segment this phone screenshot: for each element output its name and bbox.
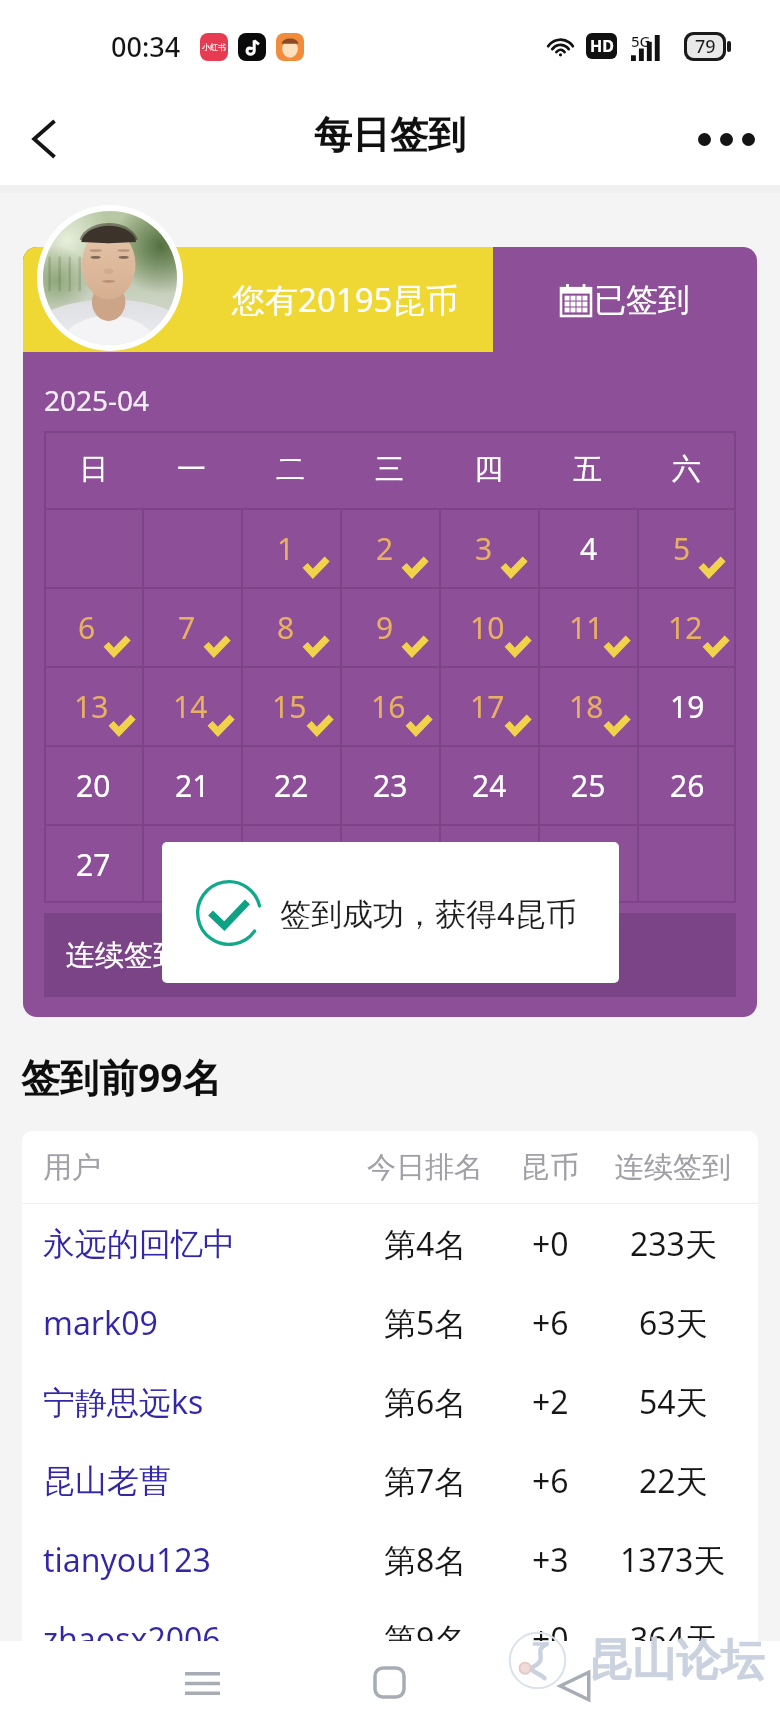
staticText: 昆山老曹 [43,1461,338,1501]
staticText: 22 [274,765,309,806]
staticText: +0 [532,1617,569,1641]
button[interactable]: 宁静思远ks [22,1362,758,1441]
staticText: 三 [375,451,404,488]
button[interactable]: 昆山老曹 [22,1441,758,1520]
staticText: +2 [532,1380,569,1424]
button[interactable]: Home [353,1646,425,1718]
staticText: +6 [532,1459,569,1503]
staticText: 9 [376,607,394,648]
staticText: +3 [532,1538,569,1582]
staticText: 22天 [639,1459,708,1503]
staticText: 26 [670,765,705,806]
staticText: 1 [277,528,295,569]
button[interactable]: 永远的回忆中 [22,1204,758,1283]
staticText: 昆币 [521,1149,579,1186]
staticText: 63天 [639,1301,708,1345]
staticText: 四 [474,451,503,488]
staticText: 第8名 [384,1538,467,1582]
staticText: 17 [470,686,505,727]
staticText: 2025-04 [44,381,150,419]
staticText: 1373天 [620,1538,726,1582]
staticText: 今日排名 [367,1149,483,1186]
staticText: 18 [569,686,604,727]
staticText: 13 [74,686,109,727]
staticText: 六 [672,451,701,488]
button[interactable]: Back [538,1650,610,1722]
staticText: 14 [173,686,208,727]
staticText: 第5名 [384,1301,467,1345]
staticText: 昆山论坛 [588,1633,764,1688]
staticText: 宁静思远ks [43,1380,338,1424]
staticText: 15 [272,686,307,727]
staticText: 用户 [43,1149,338,1186]
staticText: 364天 [630,1617,717,1641]
staticText: 五 [573,451,602,488]
staticText: 3 [475,528,493,569]
staticText: HD [590,35,614,57]
staticText: 00:34 [111,28,181,65]
staticText: tianyou123 [43,1538,338,1582]
staticText: 5G [631,31,651,51]
staticText: mark09 [43,1301,338,1345]
staticText: 签到成功，获得4昆币 [280,892,577,934]
button[interactable]: Back [8,103,80,175]
button[interactable]: 已签到 [493,247,757,352]
staticText: 21 [175,765,210,806]
staticText: 54天 [639,1380,708,1424]
staticText: 233天 [630,1222,717,1266]
staticText: 6 [78,607,96,648]
staticText: 日 [79,451,108,488]
staticText: 19 [670,686,705,727]
staticText: 2 [376,528,394,569]
staticText: zhaosx2006 [43,1617,338,1641]
staticText: 25 [571,765,606,806]
button[interactable]: mark09 [22,1283,758,1362]
staticText: 一 [177,451,206,488]
staticText: 签到前99名 [21,1050,222,1103]
staticText: 已签到 [594,280,690,320]
staticText: +0 [532,1222,569,1266]
staticText: 小红书 [202,42,226,52]
staticText: 7 [178,607,196,648]
staticText: 8 [277,607,295,648]
staticText: 连续签到 [66,937,182,974]
staticText: 第9名 [384,1617,467,1641]
staticText: 连续签到 [615,1149,731,1186]
staticText: 您有20195昆币 [232,277,459,322]
staticText: +6 [532,1301,569,1345]
staticText: 永远的回忆中 [43,1224,338,1264]
staticText: 5 [673,528,691,569]
staticText: 11 [569,607,604,648]
staticText: 第4名 [384,1222,467,1266]
staticText: 4 [580,528,598,569]
staticText: 每日签到 [314,111,466,159]
button[interactable]: Recent apps [166,1647,238,1719]
staticText: 12 [668,607,703,648]
staticText: 20 [76,765,111,806]
staticText: 23 [373,765,408,806]
button[interactable]: zhaosx2006 [22,1599,758,1641]
staticText: 16 [371,686,406,727]
staticText: 第7名 [384,1459,467,1503]
staticText: 二 [276,451,305,488]
staticText: 10 [470,607,505,648]
staticText: 24 [472,765,507,806]
staticText: 79 [695,34,716,59]
button[interactable]: More options [688,101,764,177]
staticText: 第6名 [384,1380,467,1424]
button[interactable]: tianyou123 [22,1520,758,1599]
staticText: 27 [76,844,111,885]
